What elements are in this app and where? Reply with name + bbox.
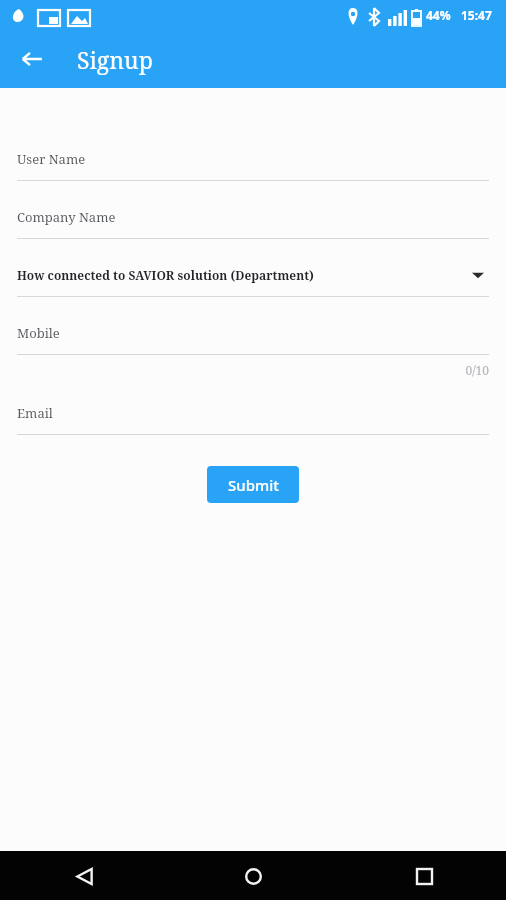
staticText: Company Name [17, 208, 116, 226]
button[interactable]: Email [17, 392, 489, 435]
staticText: Submit [228, 475, 279, 495]
staticText: 44% [426, 7, 451, 23]
staticText: How connected to SAVIOR solution (Depart… [17, 267, 314, 283]
button[interactable]: Back [60, 852, 108, 900]
staticText: Email [17, 404, 53, 422]
button[interactable]: How connected to SAVIOR solution (Depart… [17, 254, 489, 297]
button[interactable]: User Name [17, 138, 489, 181]
staticText: User Name [17, 150, 86, 168]
staticText: 0/10 [17, 362, 489, 378]
button[interactable]: Company Name [17, 196, 489, 239]
staticText: Signup [77, 44, 153, 75]
button[interactable]: Mobile [17, 312, 489, 378]
button[interactable]: Home [229, 852, 277, 900]
button[interactable]: Back [12, 39, 52, 79]
button[interactable]: Submit [207, 466, 299, 503]
staticText: 15:47 [461, 7, 492, 23]
staticText: Mobile [17, 324, 60, 342]
button[interactable]: Recent apps [400, 852, 448, 900]
